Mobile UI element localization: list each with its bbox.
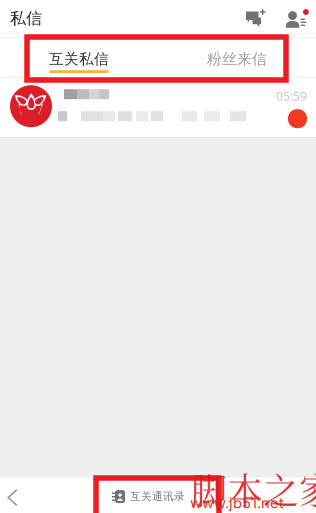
button[interactable]: 粉丝来信 — [158, 38, 316, 78]
staticText: 互关通讯录 — [130, 490, 185, 503]
staticText: 私信 — [10, 9, 42, 28]
staticText: 粉丝来信 — [207, 50, 267, 68]
button[interactable]: New message — [240, 2, 272, 35]
button[interactable]: 05:59 — [0, 78, 316, 137]
staticText: www.jb51.net — [190, 494, 284, 512]
button[interactable]: Back — [0, 477, 28, 513]
staticText: 脚本之家 — [191, 463, 316, 513]
button[interactable]: Contacts — [281, 2, 314, 35]
staticText: 05:59 — [276, 88, 307, 104]
button[interactable]: 互关通讯录 — [106, 477, 191, 512]
staticText: 互关私信 — [49, 50, 109, 68]
button[interactable]: 互关私信 — [0, 38, 158, 78]
